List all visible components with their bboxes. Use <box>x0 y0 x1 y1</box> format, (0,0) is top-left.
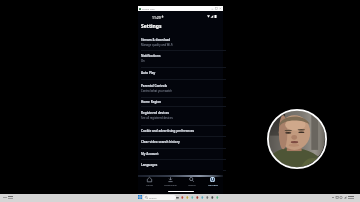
staticText: Settings <box>141 23 162 30</box>
staticText: Phone Link <box>142 7 155 10</box>
staticText: Manage quality and Wi-Fi <box>141 43 173 47</box>
button[interactable]: Registered devices <box>138 106 223 125</box>
staticText: Search <box>188 183 196 186</box>
staticText: Parental Controls <box>141 84 168 88</box>
button[interactable]: Search <box>143 195 176 200</box>
staticText: My Stuff <box>208 183 218 186</box>
button[interactable]: Home Region <box>138 97 223 106</box>
staticText: Stream & download <box>141 38 171 42</box>
staticText: Downloads <box>164 183 177 186</box>
button[interactable]: Clear video search history <box>138 136 223 148</box>
staticText: Search <box>149 196 157 199</box>
staticText: Cookie and advertising preferences <box>141 129 194 133</box>
staticText: Home Region <box>141 100 162 104</box>
staticText: Notifications <box>141 54 161 58</box>
button[interactable]: My Stuff <box>202 177 223 186</box>
staticText: Languages <box>141 163 158 167</box>
button[interactable]: Downloads <box>160 177 181 186</box>
button[interactable]: Parental Controls <box>138 79 223 97</box>
staticText: Auto Play <box>141 71 156 75</box>
button[interactable]: Notifications <box>138 50 223 67</box>
staticText: My Account <box>141 152 159 156</box>
button[interactable]: My Account <box>138 148 223 159</box>
staticText: On <box>141 59 145 63</box>
staticText: Clear video search history <box>141 140 180 144</box>
button[interactable]: Home <box>138 177 160 186</box>
staticText: Control what your watch <box>141 89 172 93</box>
staticText: 11:29 <box>152 15 161 20</box>
button[interactable]: Cookie and advertising preferences <box>138 125 223 136</box>
button[interactable]: Stream & download <box>138 34 223 50</box>
button[interactable]: Auto Play <box>138 67 223 79</box>
staticText: Home <box>146 183 153 186</box>
button[interactable]: Languages <box>138 159 223 170</box>
button[interactable]: Search <box>181 177 202 186</box>
button[interactable]: Start <box>138 195 142 199</box>
staticText: See all registered devices <box>141 116 173 120</box>
staticText: Registered devices <box>141 111 169 115</box>
